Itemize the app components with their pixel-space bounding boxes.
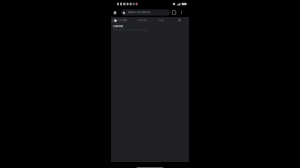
button[interactable]: Overview <box>118 19 127 22</box>
button[interactable]: Home <box>111 8 119 17</box>
button[interactable]: Tabs <box>171 8 177 17</box>
staticText: Billing <box>178 19 181 22</box>
staticText: Connections <box>137 19 147 22</box>
staticText: Monitor your traffic and connections <box>113 29 147 31</box>
staticText: Usage <box>158 19 163 22</box>
staticText: Overview <box>118 19 127 22</box>
button[interactable]: example.com/overview <box>121 9 170 16</box>
button[interactable]: Billing <box>178 19 181 22</box>
staticText: Overview <box>113 25 123 28</box>
button[interactable]: More options <box>179 8 183 17</box>
button[interactable]: Connections <box>137 19 147 22</box>
button[interactable]: Usage <box>158 19 163 22</box>
staticText: example.com/overview <box>128 11 151 14</box>
